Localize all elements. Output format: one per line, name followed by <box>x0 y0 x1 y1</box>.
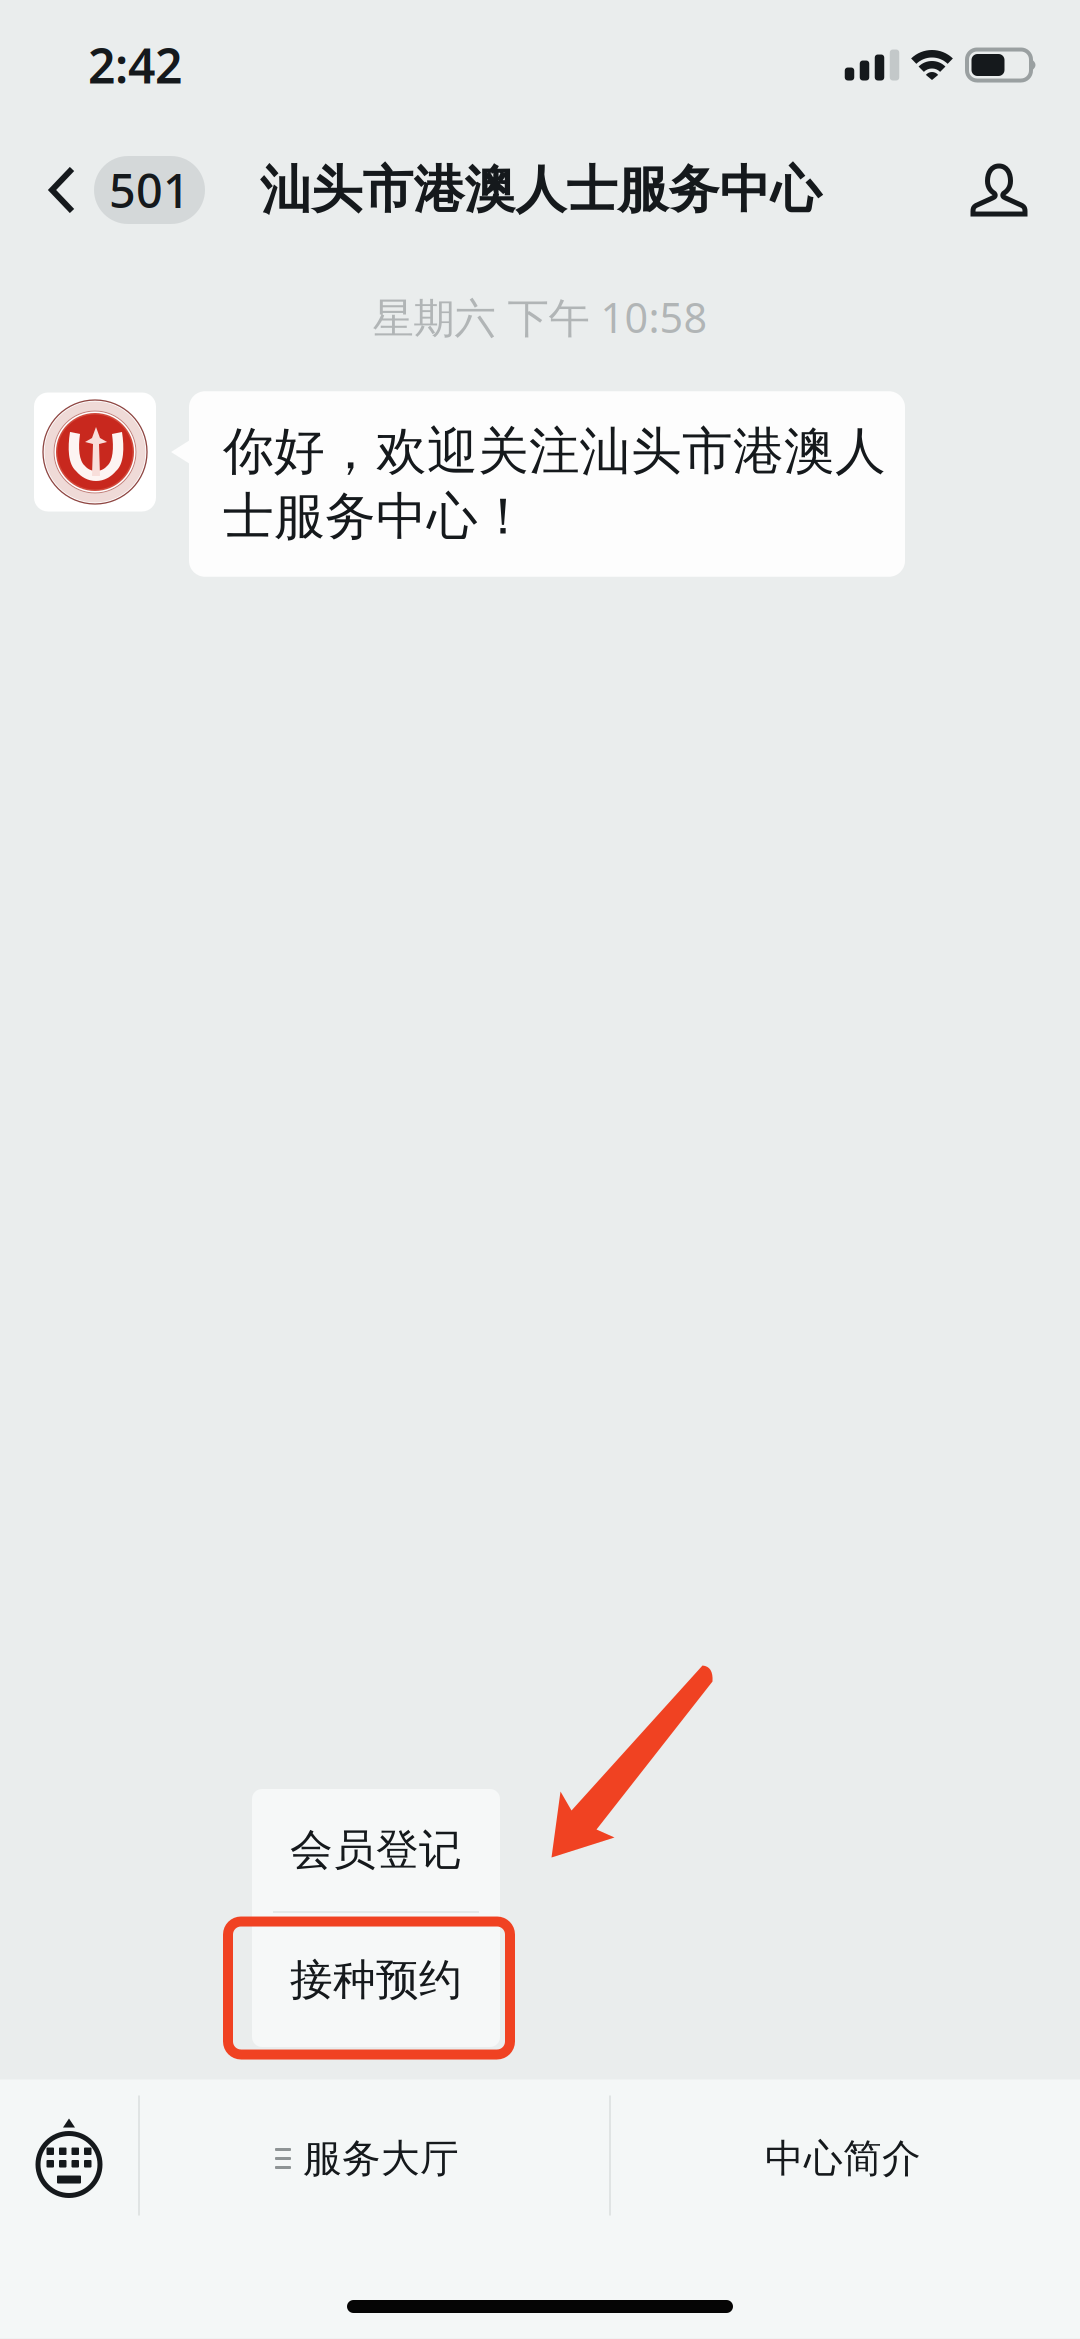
button[interactable]: 会员登记 <box>252 1789 500 1911</box>
staticText: 汕头市港澳人士服务中心 <box>260 159 821 221</box>
staticText: 501 <box>109 159 190 221</box>
button[interactable]: 中心简介 <box>610 2089 1076 2227</box>
staticText: 星期六 下午 10:58 <box>372 290 707 344</box>
button[interactable]: 汕头市港澳人士服务中心 profile <box>34 392 156 511</box>
staticText: 服务大厅 <box>303 2135 459 2182</box>
staticText: 接种预约 <box>290 1954 462 2006</box>
button[interactable]: 接种预约 <box>252 1913 500 2047</box>
button[interactable]: Account <box>943 134 1055 246</box>
button[interactable]: Keyboard <box>0 2083 138 2221</box>
staticText: 2:42 <box>88 33 182 97</box>
staticText: 你好，欢迎关注汕头市港澳人士服务中心！ <box>223 420 886 548</box>
staticText: 会员登记 <box>290 1824 462 1876</box>
button[interactable]: 服务大厅 <box>132 2089 602 2227</box>
button[interactable]: 501 <box>3 134 245 246</box>
staticText: 中心简介 <box>765 2135 921 2182</box>
